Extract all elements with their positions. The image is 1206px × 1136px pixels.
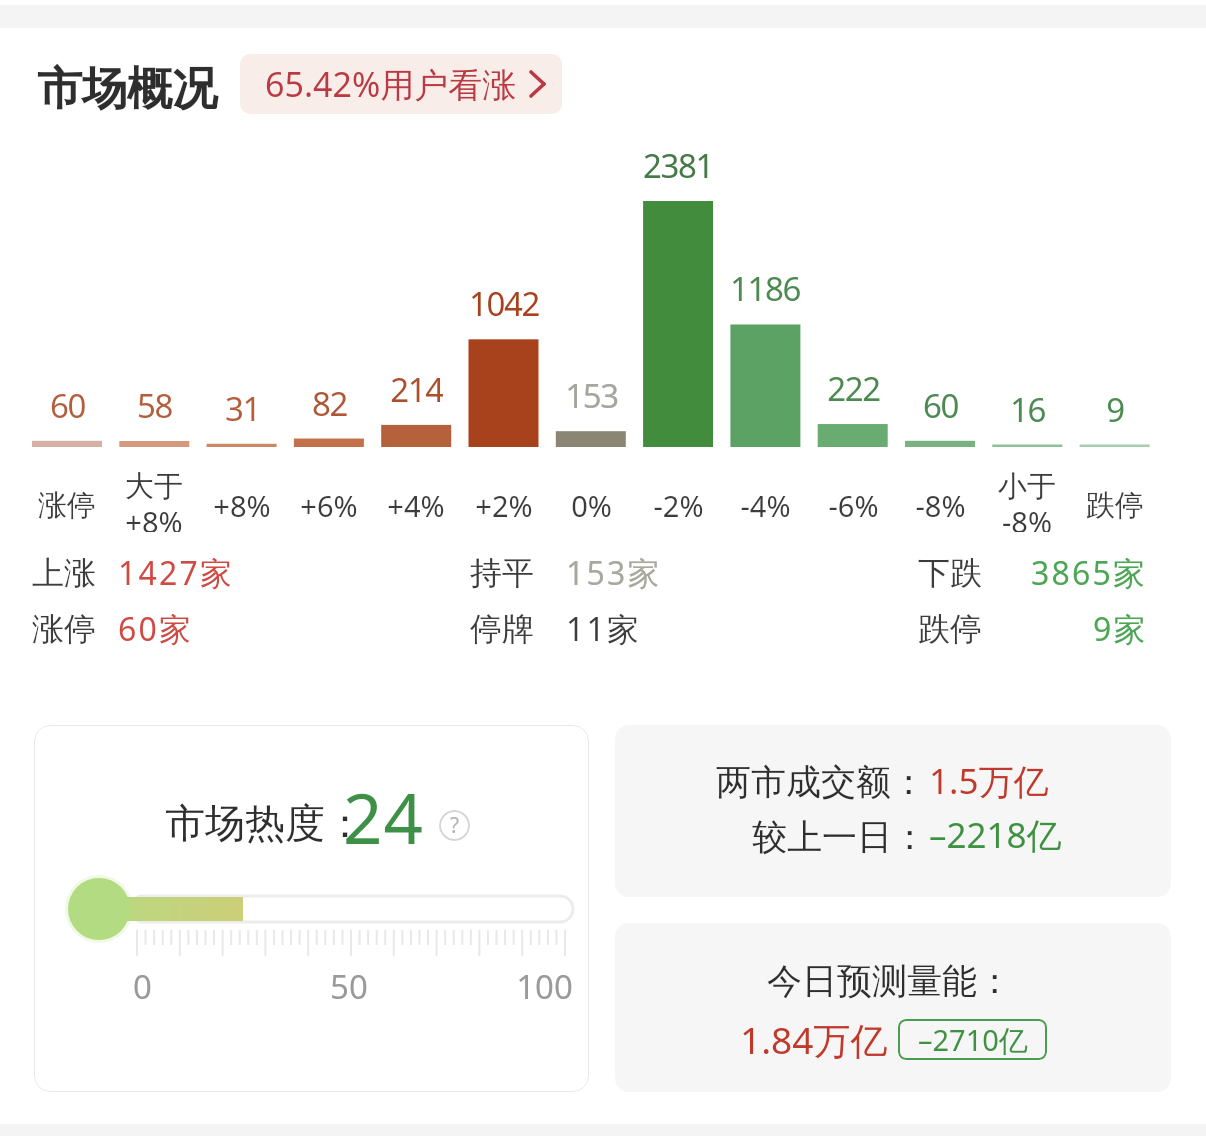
staticText: 1.84万亿 bbox=[740, 1014, 888, 1065]
staticText: 大于 +8% bbox=[125, 468, 183, 532]
staticText: 9 bbox=[1106, 387, 1124, 427]
staticText: –2218亿 bbox=[929, 811, 1062, 859]
staticText: 上涨 bbox=[32, 553, 96, 593]
staticText: 222 bbox=[827, 366, 880, 406]
staticText: 持平 bbox=[470, 553, 534, 593]
staticText: +6% bbox=[300, 486, 358, 525]
button[interactable]: 65.42%用户看涨 bbox=[240, 54, 562, 114]
staticText: 1042 bbox=[469, 281, 539, 321]
staticText: -6% bbox=[828, 486, 879, 525]
staticText: 0 bbox=[133, 964, 152, 1009]
staticText: 0% bbox=[571, 486, 612, 525]
staticText: 跌停 bbox=[918, 609, 982, 649]
staticText: 31 bbox=[225, 386, 260, 426]
staticText: -2% bbox=[653, 486, 704, 525]
staticText: 今日预测量能： bbox=[767, 959, 1012, 1003]
staticText: 停牌 bbox=[470, 609, 534, 649]
staticText: 214 bbox=[390, 367, 443, 407]
button[interactable]: 今日预测量能： bbox=[615, 923, 1171, 1092]
button[interactable]: Help bbox=[439, 810, 470, 841]
staticText: 涨停 bbox=[32, 609, 96, 649]
staticText: +4% bbox=[387, 486, 445, 525]
staticText: 153家 bbox=[566, 551, 662, 595]
staticText: -8% bbox=[915, 486, 966, 525]
staticText: 65.42%用户看涨 bbox=[265, 61, 517, 107]
staticText: 1427家 bbox=[118, 551, 235, 595]
button[interactable]: 两市成交额： bbox=[615, 725, 1171, 897]
staticText: 下跌 bbox=[918, 553, 982, 593]
staticText: 1.5万亿 bbox=[929, 757, 1049, 805]
staticText: 16 bbox=[1010, 387, 1045, 427]
staticText: 60 bbox=[50, 383, 85, 423]
staticText: -4% bbox=[740, 486, 791, 525]
staticText: 2381 bbox=[643, 143, 713, 183]
staticText: 较上一日： bbox=[752, 815, 927, 859]
staticText: 24 bbox=[343, 770, 424, 864]
staticText: +8% bbox=[213, 486, 271, 525]
staticText: ? bbox=[450, 811, 460, 840]
staticText: 60家 bbox=[118, 607, 194, 651]
staticText: 市场热度： bbox=[165, 798, 365, 848]
staticText: 1186 bbox=[730, 266, 800, 306]
staticText: 100 bbox=[516, 964, 573, 1009]
staticText: 涨停 bbox=[38, 487, 96, 524]
staticText: 市场概况 bbox=[37, 61, 217, 118]
staticText: 两市成交额： bbox=[716, 760, 926, 804]
staticText: 11家 bbox=[566, 607, 642, 651]
staticText: 跌停 bbox=[1086, 487, 1144, 524]
staticText: 60 bbox=[923, 383, 958, 423]
staticText: –2710亿 bbox=[918, 1020, 1028, 1060]
staticText: 9家 bbox=[1093, 607, 1148, 651]
staticText: 153 bbox=[565, 373, 618, 413]
staticText: +2% bbox=[475, 486, 533, 525]
button[interactable]: 市场热度： bbox=[34, 725, 589, 1092]
staticText: 小于 -8% bbox=[998, 468, 1056, 532]
staticText: 82 bbox=[312, 381, 347, 421]
button[interactable]: 市场热度滑块 bbox=[68, 877, 132, 941]
staticText: 50 bbox=[330, 964, 368, 1009]
staticText: 58 bbox=[137, 383, 172, 423]
staticText: 3865家 bbox=[1031, 551, 1148, 595]
